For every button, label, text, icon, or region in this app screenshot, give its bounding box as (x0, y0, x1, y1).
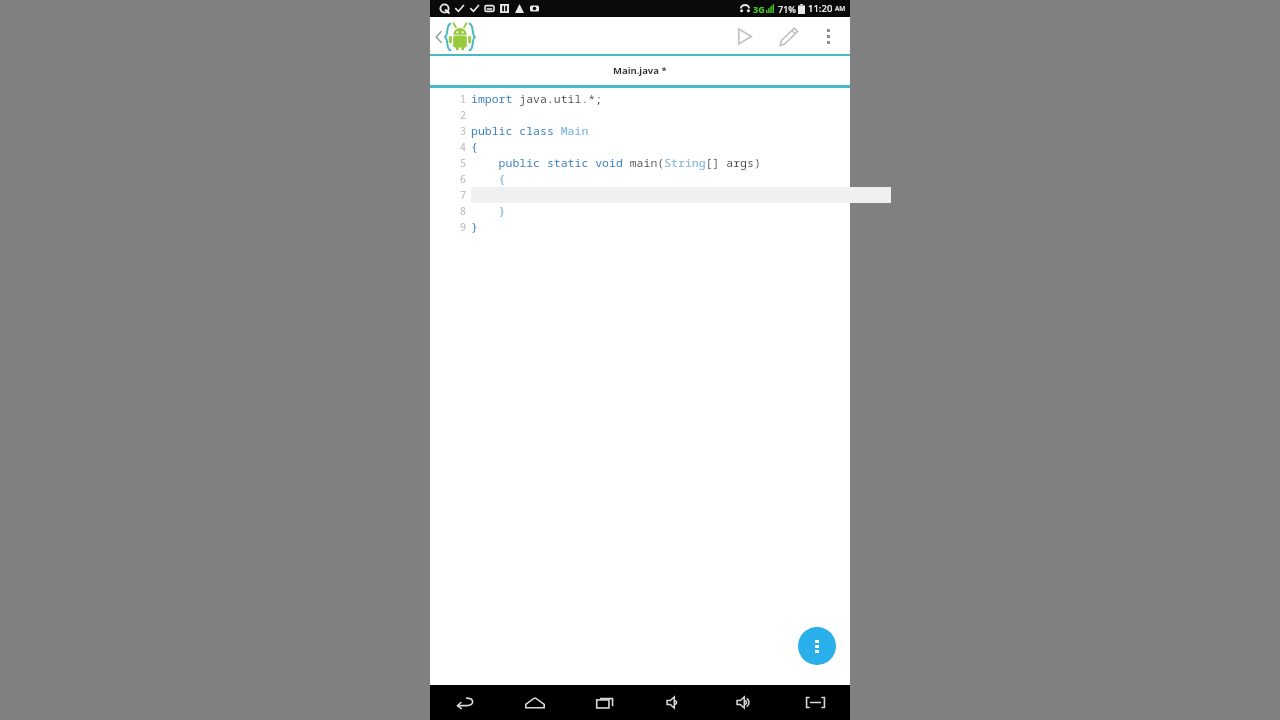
staticText: 9 (460, 220, 466, 234)
staticText: 71% (778, 3, 796, 15)
staticText: 6 (460, 172, 466, 186)
staticText: public static void main(String[] args) (471, 155, 761, 171)
button[interactable]: Edit (766, 17, 810, 56)
staticText: Main.java * (613, 64, 667, 77)
button[interactable]: Main.java * (430, 56, 850, 85)
staticText: 4 (460, 140, 466, 154)
staticText: { (471, 171, 506, 187)
staticText: AM (835, 4, 846, 13)
button[interactable]: Expand screen (780, 685, 850, 720)
staticText: 5 (460, 156, 466, 170)
staticText: 7 (460, 188, 466, 202)
staticText: } (471, 203, 506, 219)
staticText: 3G (753, 3, 765, 15)
button[interactable]: Volume up (710, 685, 780, 720)
button[interactable]: Back (430, 685, 500, 720)
staticText: import java.util.*; (471, 91, 603, 107)
staticText: 1 (460, 92, 466, 106)
button[interactable]: More actions (798, 627, 836, 665)
staticText: public class Main (471, 123, 589, 139)
button[interactable]: More options (810, 17, 846, 56)
staticText: } (471, 219, 478, 235)
button[interactable]: Volume down (640, 685, 710, 720)
staticText: 3 (460, 124, 466, 138)
button[interactable]: Recent apps (570, 685, 640, 720)
staticText: 8 (460, 204, 466, 218)
staticText: { (471, 139, 478, 155)
staticText: 2 (460, 108, 466, 122)
button[interactable]: Navigate up (432, 17, 480, 56)
button[interactable]: Run (722, 17, 766, 56)
button[interactable]: Home (500, 685, 570, 720)
staticText: 11:20 (808, 2, 833, 15)
